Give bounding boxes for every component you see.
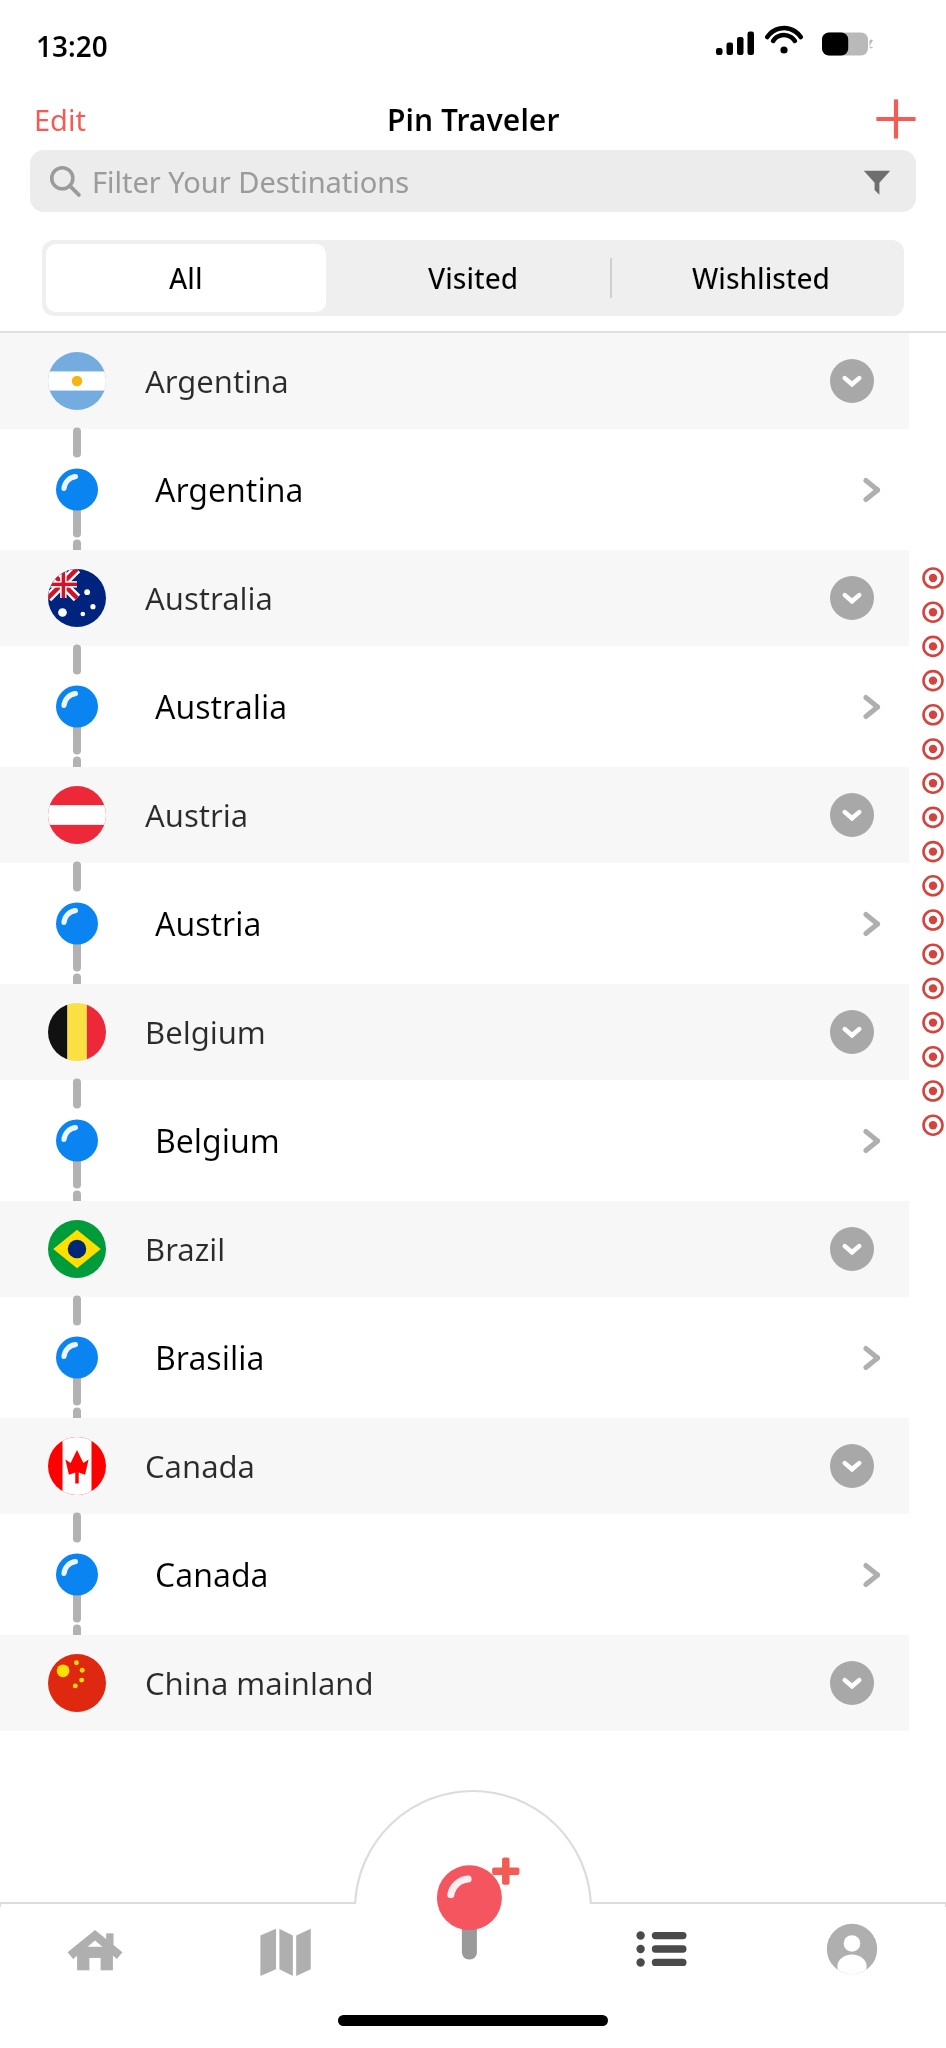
staticText: China mainland: [145, 1662, 374, 1704]
button[interactable]: Brasilia: [0, 1297, 946, 1418]
button[interactable]: Collapse Brazil: [830, 1227, 874, 1271]
button[interactable]: Austria: [0, 863, 946, 984]
button[interactable]: Add pin: [413, 1851, 533, 1981]
button[interactable]: Open Argentina: [850, 468, 894, 512]
staticText: Brazil: [145, 1228, 226, 1270]
button[interactable]: Argentina: [0, 429, 946, 550]
button[interactable]: Canada: [0, 1514, 946, 1635]
staticText: Belgium: [155, 1119, 280, 1163]
button[interactable]: Wishlisted: [617, 240, 904, 316]
staticText: 47: [870, 30, 892, 56]
button[interactable]: Collapse Belgium: [830, 1010, 874, 1054]
staticText: Argentina: [145, 360, 289, 402]
button[interactable]: Profile: [757, 1903, 946, 2018]
button[interactable]: Search: [30, 150, 916, 212]
button[interactable]: Collapse China mainland: [830, 1661, 874, 1705]
button[interactable]: Belgium: [0, 984, 946, 1080]
button[interactable]: Belgium: [0, 1080, 946, 1201]
button[interactable]: Open Belgium: [850, 1119, 894, 1163]
button[interactable]: Open Australia: [850, 685, 894, 729]
button[interactable]: Open Brasilia: [850, 1336, 894, 1380]
button[interactable]: Home: [0, 1903, 190, 2018]
button[interactable]: Open Austria: [850, 902, 894, 946]
staticText: Wishlisted: [692, 259, 830, 297]
staticText: Australia: [145, 577, 273, 619]
button[interactable]: Canada: [0, 1418, 946, 1514]
button[interactable]: Add destination: [868, 91, 924, 147]
other: Search: [48, 164, 82, 198]
staticText: 13:20: [36, 27, 108, 65]
button[interactable]: Brazil: [0, 1201, 946, 1297]
staticText: Pin Traveler: [387, 99, 560, 140]
button[interactable]: Collapse Argentina: [830, 359, 874, 403]
button[interactable]: Map: [190, 1903, 379, 2018]
button[interactable]: Collapse Canada: [830, 1444, 874, 1488]
button[interactable]: Austria: [0, 767, 946, 863]
button[interactable]: Edit: [0, 92, 120, 147]
button[interactable]: Australia: [0, 550, 946, 646]
staticText: Austria: [155, 902, 262, 946]
staticText: Belgium: [145, 1011, 266, 1053]
staticText: Brasilia: [155, 1336, 265, 1380]
button[interactable]: China mainland: [0, 1635, 946, 1731]
button[interactable]: Argentina: [0, 333, 946, 429]
staticText: Canada: [155, 1553, 269, 1597]
button[interactable]: All: [46, 244, 326, 312]
staticText: Argentina: [155, 468, 304, 512]
staticText: Filter Your Destinations: [92, 162, 410, 201]
button[interactable]: Visited: [330, 240, 617, 316]
button[interactable]: Open Canada: [850, 1553, 894, 1597]
button[interactable]: List: [568, 1903, 757, 2018]
staticText: All: [169, 259, 203, 297]
button[interactable]: Collapse Australia: [830, 576, 874, 620]
staticText: Edit: [34, 100, 86, 139]
button[interactable]: Collapse Austria: [830, 793, 874, 837]
staticText: Visited: [428, 259, 519, 297]
button[interactable]: Filter: [852, 156, 902, 206]
staticText: Austria: [145, 794, 249, 836]
staticText: Canada: [145, 1445, 255, 1487]
button[interactable]: Australia: [0, 646, 946, 767]
staticText: Australia: [155, 685, 288, 729]
